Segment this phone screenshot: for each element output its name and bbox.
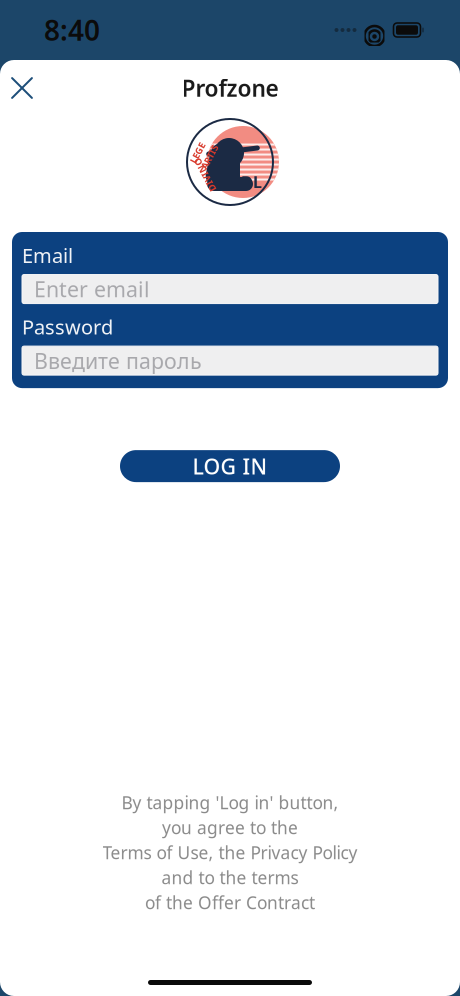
button[interactable]: Введите пароль xyxy=(22,346,438,375)
button[interactable]: Close xyxy=(0,66,44,110)
button[interactable]: Enter email xyxy=(22,275,438,304)
staticText: Profzone xyxy=(181,73,278,103)
staticText: DIVINO xyxy=(187,169,223,181)
staticText: Password xyxy=(22,314,113,340)
staticText: LEGE ARTIS xyxy=(191,142,217,166)
button[interactable]: LOG IN xyxy=(120,450,340,482)
staticText: NDL xyxy=(228,171,262,193)
staticText: By tapping 'Log in' button, xyxy=(121,791,338,814)
staticText: Email xyxy=(22,242,73,269)
staticText: Terms of Use, the Privacy Policy xyxy=(102,841,357,864)
staticText: of the Offer Contract xyxy=(145,891,315,914)
staticText: Введите пароль xyxy=(34,346,202,375)
staticText: 8:40 xyxy=(44,11,100,49)
staticText: Enter email xyxy=(34,275,150,303)
staticText: and to the terms xyxy=(161,866,298,889)
staticText: LOG IN xyxy=(192,452,267,480)
staticText: you agree to the xyxy=(162,816,298,839)
